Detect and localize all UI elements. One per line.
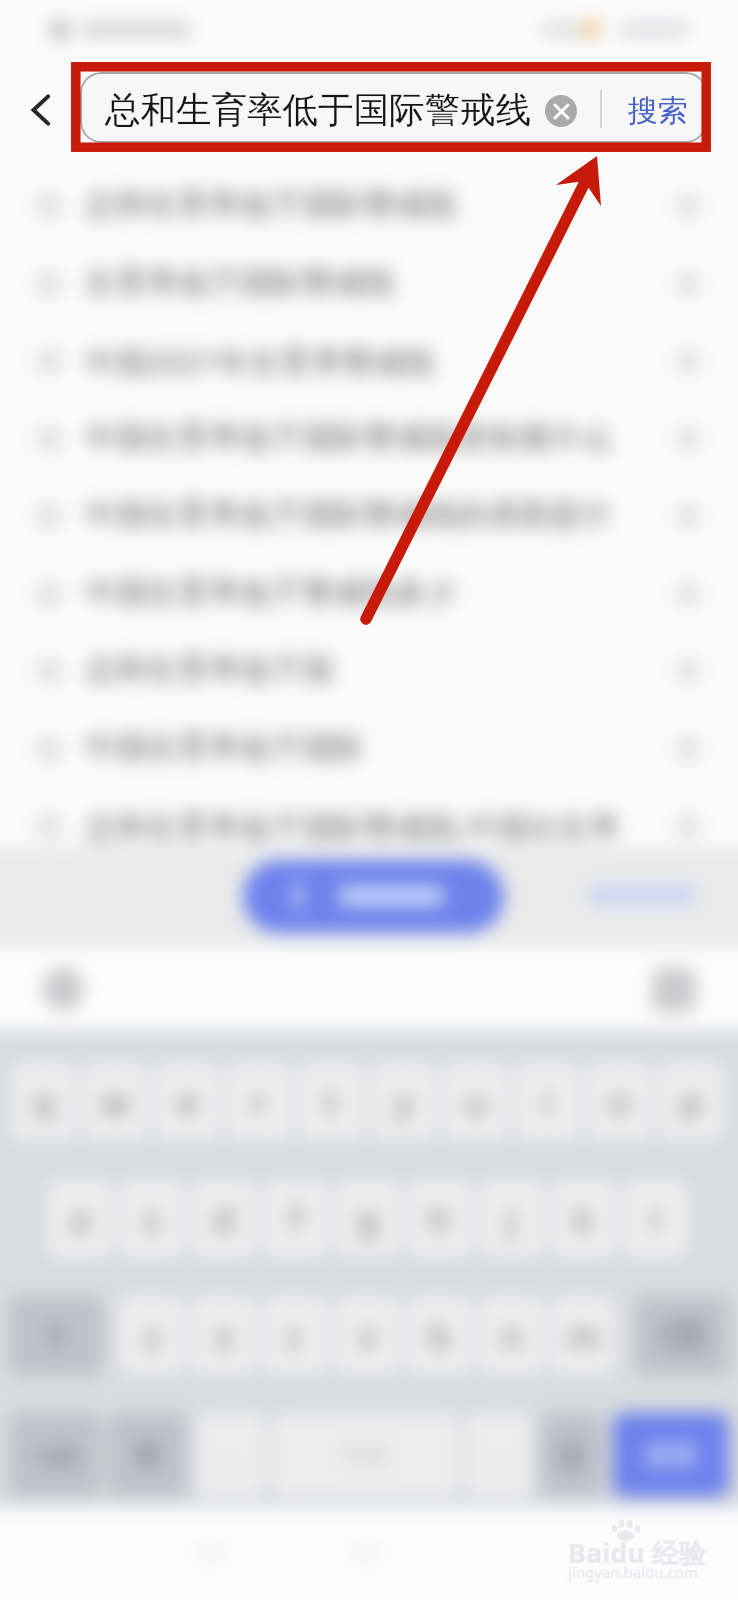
button[interactable]: 搜索	[613, 86, 703, 136]
button[interactable]: o	[587, 1062, 652, 1141]
staticText: g	[357, 1196, 378, 1242]
staticText: s	[143, 1196, 160, 1242]
staticText: h	[429, 1196, 451, 1242]
button[interactable]: x	[191, 1296, 256, 1375]
button[interactable]: 总和生育率低于国际警戒线	[80, 72, 707, 143]
button[interactable]: w	[83, 1062, 148, 1141]
staticText: jingyan.baidu.com	[568, 1562, 698, 1582]
staticText: Baidu 经验	[568, 1534, 706, 1571]
staticText: 总和生育率低于国际警戒线,中国出生率	[85, 805, 621, 847]
button[interactable]: .	[466, 1413, 532, 1497]
button[interactable]: u	[443, 1062, 508, 1141]
button[interactable]: a	[47, 1179, 112, 1258]
staticText: ⌫	[658, 1316, 707, 1356]
button[interactable]: 123	[9, 1413, 101, 1497]
staticText: 中国2021年生育率警戒线	[85, 340, 435, 382]
button[interactable]	[243, 860, 504, 933]
staticText: e	[178, 1079, 198, 1125]
button[interactable]: h	[407, 1179, 472, 1258]
staticText: 总和生育率低于国	[85, 650, 333, 689]
staticText: 符	[134, 1438, 162, 1473]
button[interactable]: c	[263, 1296, 328, 1375]
staticText: 生育率低于国际警戒线	[85, 263, 395, 302]
staticText: 搜索	[645, 1439, 697, 1472]
staticText: j	[507, 1196, 516, 1242]
button[interactable]: ☺	[540, 1413, 604, 1497]
staticText: f	[290, 1196, 302, 1242]
button[interactable]: l	[623, 1179, 688, 1258]
staticText: c	[287, 1313, 304, 1359]
button[interactable]: e	[155, 1062, 220, 1141]
staticText: v	[359, 1313, 377, 1359]
staticText: 中国生育率低于警戒线多少	[85, 573, 457, 612]
staticText: n	[501, 1313, 523, 1359]
staticText: q	[33, 1079, 54, 1125]
staticText: a	[70, 1196, 90, 1242]
staticText: r	[252, 1079, 267, 1125]
button[interactable]: v	[335, 1296, 400, 1375]
button[interactable]: ⇧	[9, 1296, 103, 1375]
button[interactable]: y	[371, 1062, 436, 1141]
staticText: 总和生育率低于国际警戒线	[105, 88, 531, 133]
staticText: u	[465, 1079, 487, 1125]
staticText: y	[395, 1079, 413, 1125]
staticText: m	[568, 1313, 600, 1359]
staticText: 搜索	[628, 92, 688, 130]
button[interactable]: Back	[13, 82, 69, 138]
staticText: z	[144, 1313, 160, 1359]
button[interactable]: g	[335, 1179, 400, 1258]
button[interactable]: f	[263, 1179, 328, 1258]
staticText: d	[213, 1196, 234, 1242]
staticText: k	[574, 1196, 593, 1242]
staticText: 中国生育率低于国际警戒线的原因是什	[85, 495, 612, 534]
staticText: p	[681, 1079, 702, 1125]
button[interactable]: j	[479, 1179, 544, 1258]
button[interactable]: b	[407, 1296, 472, 1375]
button[interactable]: 搜索	[613, 1413, 729, 1497]
button[interactable]: k	[551, 1179, 616, 1258]
staticText: ☺	[555, 1437, 589, 1474]
staticText: i	[543, 1079, 552, 1125]
button[interactable]: ⌫	[635, 1296, 729, 1375]
staticText: o	[609, 1079, 630, 1125]
button[interactable]: Clear	[545, 95, 577, 127]
button[interactable]: q	[11, 1062, 76, 1141]
button[interactable]: t	[299, 1062, 364, 1141]
button[interactable]: ,	[196, 1413, 266, 1497]
staticText: t	[325, 1079, 338, 1125]
button[interactable]: p	[659, 1062, 724, 1141]
staticText: b	[429, 1313, 450, 1359]
staticText: l	[651, 1196, 660, 1242]
button[interactable]: 符	[108, 1413, 188, 1497]
staticText: w	[102, 1079, 129, 1125]
staticText: x	[215, 1313, 233, 1359]
button[interactable]: z	[119, 1296, 184, 1375]
button[interactable]: d	[191, 1179, 256, 1258]
button[interactable]: m	[551, 1296, 616, 1375]
button[interactable]: n	[479, 1296, 544, 1375]
staticText: 123	[33, 1438, 78, 1473]
button[interactable]: r	[227, 1062, 292, 1141]
staticText: 中国生育率低于国际警戒线意味着什么	[85, 418, 612, 457]
button[interactable]: s	[119, 1179, 184, 1258]
staticText: 总和生育率低于国际警戒线	[85, 185, 457, 224]
staticText: 中国生育率低于国际	[85, 728, 364, 767]
